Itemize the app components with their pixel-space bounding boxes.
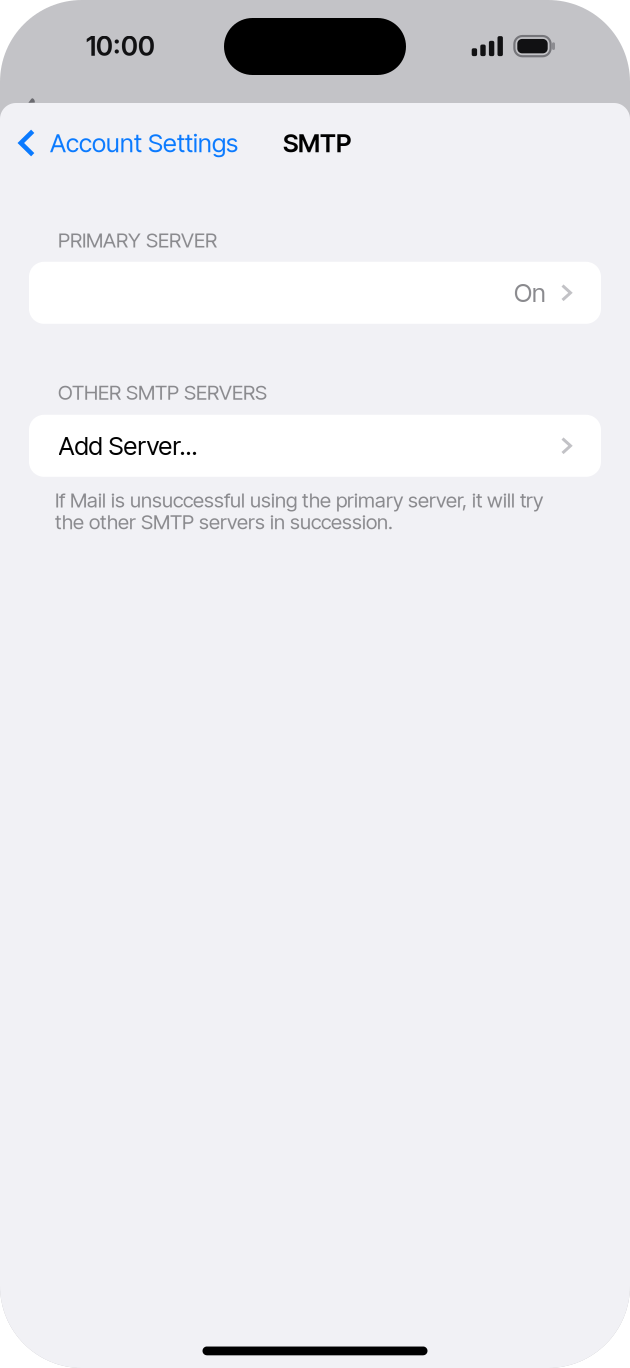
staticText: PRIMARY SERVER bbox=[58, 228, 217, 252]
staticText: OTHER SMTP SERVERS bbox=[58, 380, 267, 405]
staticText: On bbox=[514, 277, 546, 308]
button[interactable]: On bbox=[29, 262, 601, 324]
staticText: Add Server... bbox=[58, 430, 197, 461]
staticText: If Mail is unsuccessful using the primar… bbox=[55, 488, 543, 534]
button[interactable]: Add Server... bbox=[29, 415, 601, 477]
staticText: Account Settings bbox=[50, 128, 238, 158]
button[interactable]: Account Settings bbox=[0, 121, 238, 165]
staticText: 10:00 bbox=[86, 30, 155, 62]
staticText: SMTP bbox=[283, 128, 351, 158]
